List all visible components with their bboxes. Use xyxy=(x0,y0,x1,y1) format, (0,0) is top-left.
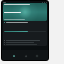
button[interactable] xyxy=(4,44,46,45)
button[interactable] xyxy=(3,3,47,21)
button[interactable]: Stats xyxy=(24,54,27,57)
button[interactable]: Settings xyxy=(35,54,38,57)
button[interactable] xyxy=(4,42,46,43)
button[interactable]: Home xyxy=(12,54,15,57)
button[interactable] xyxy=(3,21,47,46)
button[interactable] xyxy=(4,40,46,41)
